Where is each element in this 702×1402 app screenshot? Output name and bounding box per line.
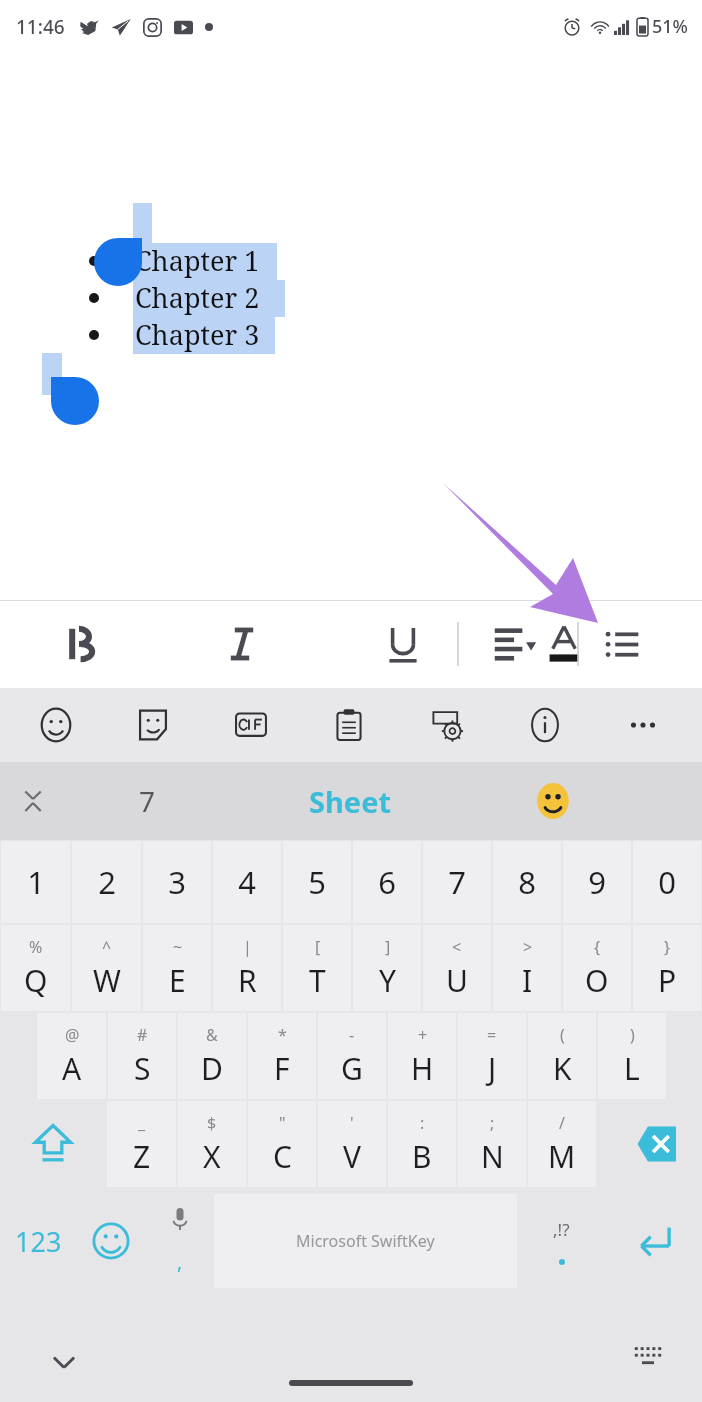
staticText: B <box>412 1136 432 1177</box>
staticText: ] <box>385 936 391 958</box>
button[interactable]: @ <box>37 1013 106 1099</box>
button[interactable]: + <box>388 1013 456 1099</box>
staticText: ) <box>630 1024 635 1046</box>
button[interactable]: & <box>178 1013 246 1099</box>
button[interactable]: 3 <box>143 841 211 923</box>
staticText: + <box>418 1024 428 1046</box>
button[interactable]: ~ <box>143 925 211 1011</box>
button[interactable]: | <box>213 925 281 1011</box>
button[interactable]: Settings <box>403 688 491 762</box>
staticText: ^ <box>102 936 112 958</box>
staticText: 5 <box>308 861 326 903</box>
button[interactable]: Emoji <box>76 1188 145 1294</box>
staticText: ; <box>490 1112 495 1134</box>
button[interactable]: ; <box>458 1101 526 1187</box>
staticText: ' <box>350 1112 354 1134</box>
button[interactable]: Switch keyboard <box>618 1326 678 1386</box>
staticText: N <box>481 1136 504 1177</box>
button[interactable]: 1 <box>1 841 70 923</box>
button[interactable]: ' <box>318 1101 386 1187</box>
button[interactable]: Info <box>501 688 589 762</box>
button[interactable]: Alignment <box>470 600 560 688</box>
button[interactable]: Emoji <box>12 688 100 762</box>
staticText: F <box>274 1048 290 1089</box>
button[interactable]: 7 <box>423 841 491 923</box>
staticText: Sheet <box>309 782 392 821</box>
button[interactable]: ) <box>598 1013 666 1099</box>
button[interactable]: Voice input / comma <box>145 1188 214 1294</box>
staticText: { <box>594 936 601 958</box>
button[interactable]: - <box>318 1013 386 1099</box>
button[interactable]: Bulleted list <box>578 600 666 688</box>
button[interactable]: : <box>388 1101 456 1187</box>
staticText: @ <box>65 1024 80 1046</box>
button[interactable]: _ <box>107 1101 176 1187</box>
staticText: V <box>343 1136 361 1177</box>
staticText: $ <box>207 1112 217 1134</box>
button[interactable]: " <box>248 1101 316 1187</box>
button[interactable]: 2 <box>72 841 141 923</box>
staticText: [ <box>315 936 321 958</box>
button[interactable]: Emoji suggestion <box>508 762 598 840</box>
button[interactable]: 9 <box>563 841 631 923</box>
button[interactable]: 7 <box>100 762 195 840</box>
button[interactable]: Italic <box>202 604 282 684</box>
staticText: 9 <box>588 861 606 903</box>
button[interactable]: > <box>493 925 561 1011</box>
staticText: H <box>411 1048 434 1089</box>
button[interactable]: * <box>248 1013 316 1099</box>
button[interactable]: 0 <box>633 841 701 923</box>
button[interactable]: # <box>108 1013 176 1099</box>
button[interactable]: Underline <box>363 604 443 684</box>
button[interactable]: % <box>1 925 70 1011</box>
staticText: A <box>62 1048 82 1089</box>
button[interactable]: ^ <box>72 925 141 1011</box>
button[interactable]: More <box>599 688 687 762</box>
button[interactable]: Text color <box>524 604 604 684</box>
button[interactable]: Stickers <box>109 688 197 762</box>
button[interactable]: Enter <box>606 1188 702 1294</box>
button[interactable]: ] <box>353 925 421 1011</box>
button[interactable]: { <box>563 925 631 1011</box>
button[interactable]: Sheet <box>255 762 445 840</box>
staticText: 11:46 <box>16 14 65 40</box>
button[interactable]: / <box>528 1101 596 1187</box>
staticText: } <box>664 936 671 958</box>
staticText: = <box>487 1024 497 1046</box>
button[interactable]: ( <box>528 1013 596 1099</box>
staticText: # <box>137 1024 148 1046</box>
button[interactable]: Bold <box>41 604 121 684</box>
staticText: 6 <box>378 861 396 903</box>
button[interactable]: 123 <box>0 1188 76 1294</box>
button[interactable]: = <box>458 1013 526 1099</box>
button[interactable]: 4 <box>213 841 281 923</box>
staticText: T <box>309 960 326 1001</box>
button[interactable]: Collapse <box>4 762 62 840</box>
button[interactable]: Shift <box>0 1100 106 1188</box>
staticText: J <box>488 1048 497 1089</box>
staticText: Y <box>379 960 396 1001</box>
staticText: / <box>559 1112 565 1134</box>
button[interactable]: < <box>423 925 491 1011</box>
button[interactable]: Hide keyboard <box>28 1326 100 1398</box>
button[interactable]: Clipboard <box>305 688 393 762</box>
staticText: O <box>585 960 609 1001</box>
staticText: Chapter 1 <box>135 242 260 279</box>
staticText: > <box>523 936 533 958</box>
button[interactable]: [ <box>283 925 351 1011</box>
button[interactable]: Backspace <box>597 1100 702 1188</box>
button[interactable]: Space <box>214 1194 517 1288</box>
button[interactable]: } <box>633 925 701 1011</box>
staticText: U <box>446 960 468 1001</box>
button[interactable]: 5 <box>283 841 351 923</box>
staticText: P <box>658 960 677 1001</box>
staticText: 1 <box>27 861 45 903</box>
staticText: < <box>452 936 462 958</box>
button[interactable]: GIF <box>207 688 295 762</box>
button[interactable]: 6 <box>353 841 421 923</box>
button[interactable]: Punctuation <box>517 1188 606 1294</box>
staticText: R <box>238 960 257 1001</box>
button[interactable]: $ <box>178 1101 246 1187</box>
button[interactable]: 8 <box>493 841 561 923</box>
